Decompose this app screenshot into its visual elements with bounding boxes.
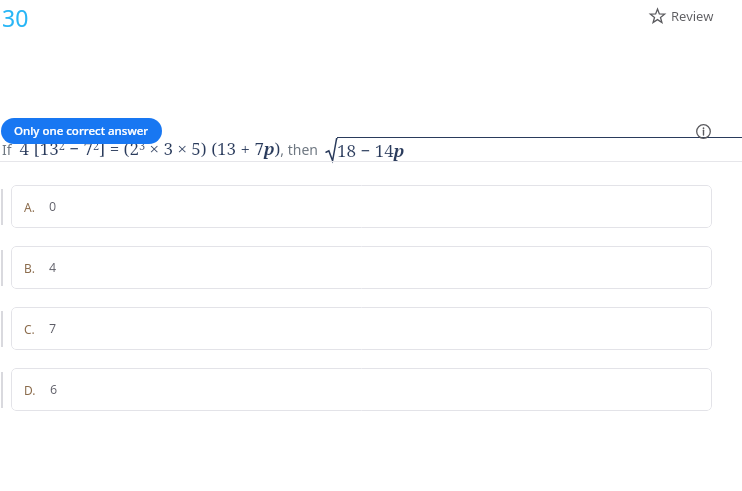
button[interactable]: 30	[2, 2, 29, 33]
button[interactable]: A.	[11, 185, 712, 228]
staticText: 18 − 14p	[337, 139, 405, 162]
staticText: Only one correct answer	[14, 123, 149, 139]
staticText: 4	[49, 259, 57, 276]
button[interactable]: C.	[11, 307, 712, 350]
button[interactable]: Review	[650, 7, 714, 25]
button[interactable]: Information	[692, 120, 714, 142]
staticText: 0	[49, 198, 57, 215]
staticText: Review	[671, 7, 714, 25]
staticText: B.	[24, 260, 35, 276]
staticText: 7	[49, 320, 57, 337]
staticText: A.	[24, 199, 35, 215]
button[interactable]: Only one correct answer	[1, 118, 162, 144]
button[interactable]: D.	[11, 368, 712, 411]
staticText: 6	[50, 381, 58, 398]
staticText: D.	[24, 382, 36, 398]
staticText: 30	[2, 2, 29, 33]
staticText: If 4 [132 − 72] = (23 × 3 × 5) (13 + 7p)…	[2, 137, 326, 160]
button[interactable]: B.	[11, 246, 712, 289]
staticText: C.	[24, 321, 35, 337]
